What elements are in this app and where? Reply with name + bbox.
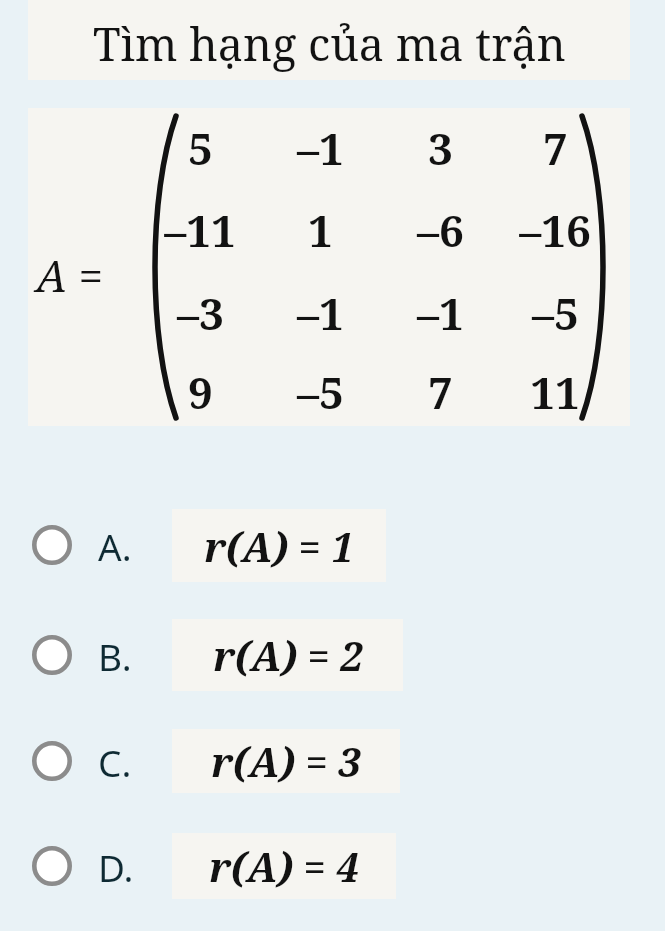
staticText: –3	[177, 283, 224, 343]
staticText: –6	[417, 200, 464, 260]
other: Option B.	[32, 635, 72, 675]
other: Option D.	[32, 846, 72, 886]
staticText: C.	[98, 737, 132, 787]
staticText: –5	[297, 362, 344, 422]
staticText: Tìm hạng của ma trận	[93, 13, 566, 74]
staticText: –11	[164, 200, 236, 260]
staticText: r(A) = 1	[204, 519, 354, 573]
staticText: 11	[530, 362, 580, 422]
staticText: 5	[188, 118, 213, 178]
staticText: r(A) = 4	[209, 839, 359, 893]
button[interactable]: Option B.	[12, 607, 432, 703]
staticText: 9	[188, 362, 213, 422]
other: Option A.	[32, 525, 72, 565]
staticText: –1	[417, 283, 464, 343]
staticText: –16	[519, 200, 591, 260]
staticText: –5	[532, 283, 579, 343]
staticText: A.	[98, 521, 132, 571]
staticText: B.	[98, 631, 132, 681]
staticText: –1	[297, 283, 344, 343]
staticText: 3	[428, 118, 453, 178]
button[interactable]: Option D.	[12, 818, 432, 914]
staticText: r(A) = 3	[211, 734, 361, 788]
staticText: –1	[297, 118, 344, 178]
staticText: 7	[428, 362, 453, 422]
staticText: r(A) = 2	[213, 628, 363, 682]
button[interactable]: Option A.	[12, 497, 432, 593]
staticText: A =	[36, 245, 104, 305]
staticText: 7	[543, 118, 568, 178]
button[interactable]: Option C.	[12, 713, 432, 809]
staticText: 1	[308, 200, 333, 260]
other: Option C.	[32, 741, 72, 781]
staticText: D.	[98, 842, 134, 892]
